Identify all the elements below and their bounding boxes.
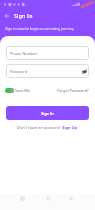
staticText: Sign In	[41, 111, 54, 116]
button[interactable]: Sign In	[6, 106, 89, 120]
button[interactable]: Save Me	[5, 88, 30, 93]
button[interactable]: Forgot Password?	[57, 88, 89, 93]
button[interactable]: Password	[6, 64, 89, 78]
button[interactable]: Back	[3, 12, 11, 20]
button[interactable]: Back	[67, 194, 75, 202]
staticText: Sign in now to begin an amazing journey	[5, 26, 74, 31]
button[interactable]: Sign Up	[62, 125, 78, 130]
staticText: Phone Number	[10, 51, 38, 56]
staticText: Password	[10, 69, 28, 74]
button[interactable]: Recent apps	[18, 194, 26, 202]
staticText: Save Me	[15, 88, 30, 93]
button[interactable]: Phone Number	[6, 46, 89, 60]
staticText: Don't have an account?	[17, 125, 62, 130]
button[interactable]: Home	[44, 194, 52, 202]
staticText: Sign In	[14, 13, 33, 20]
button[interactable]: Show password	[81, 68, 88, 75]
